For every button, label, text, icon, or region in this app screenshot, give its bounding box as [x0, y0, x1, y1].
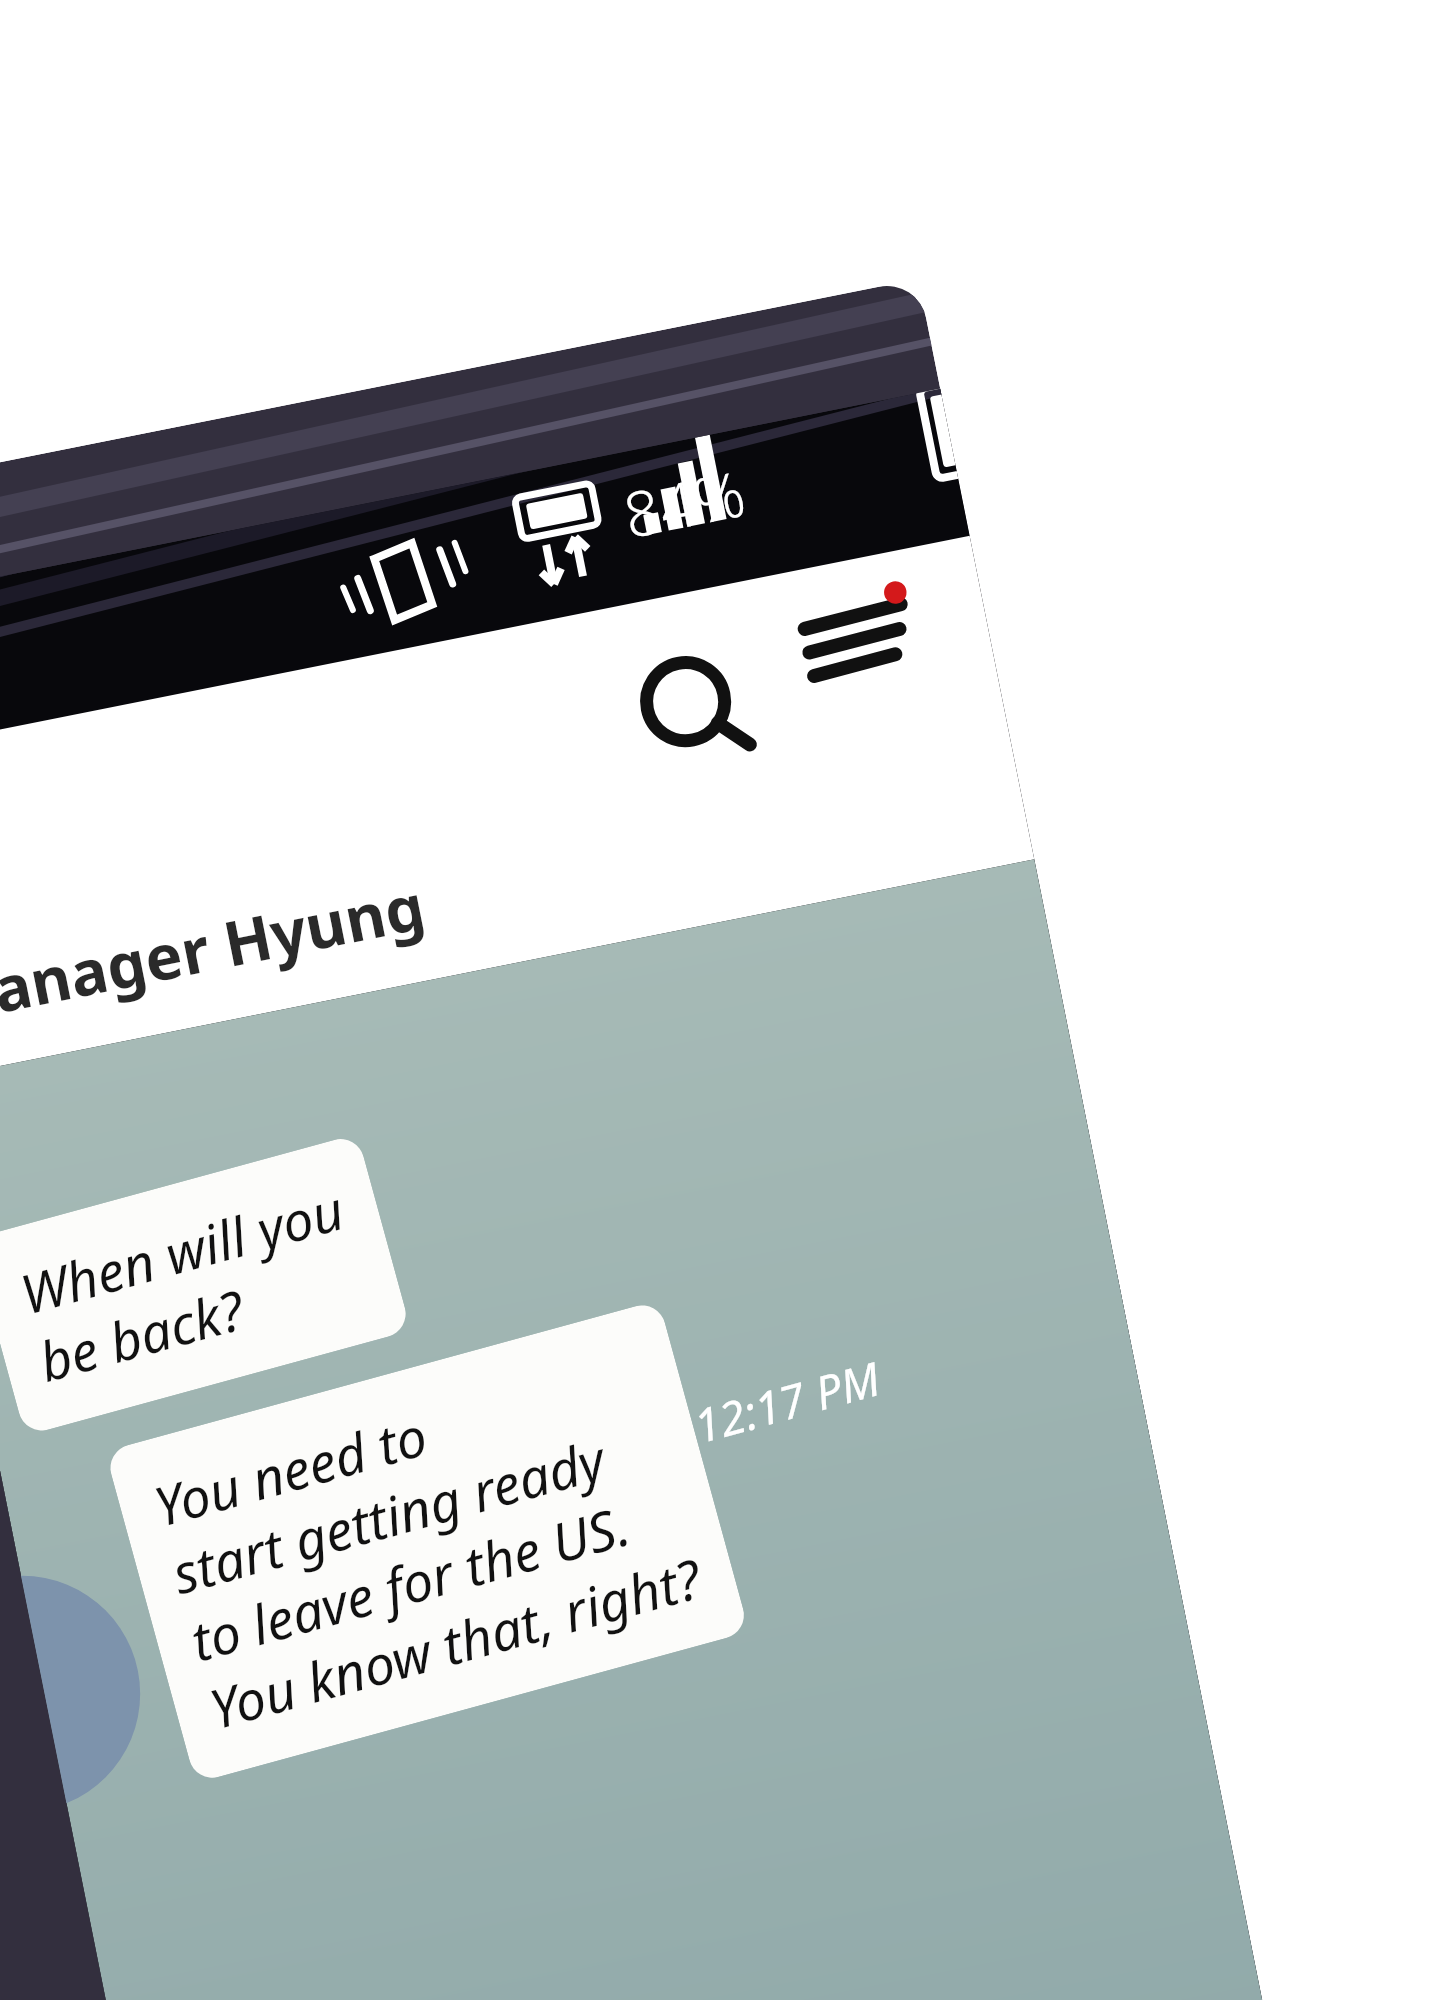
button[interactable]: When will you be back? — [0, 1131, 417, 1439]
staticText: 12:17 PM — [684, 1346, 889, 1458]
staticText: 84% — [617, 450, 753, 556]
button[interactable]: Menu — [771, 554, 948, 731]
button[interactable]: Search — [611, 623, 788, 799]
staticText: Manager Hyung — [0, 863, 431, 1042]
staticText: You need to start getting ready to leave… — [139, 1334, 716, 1749]
button[interactable]: You need to start getting ready to leave… — [97, 1295, 757, 1788]
staticText: When will you be back? — [8, 1170, 375, 1400]
